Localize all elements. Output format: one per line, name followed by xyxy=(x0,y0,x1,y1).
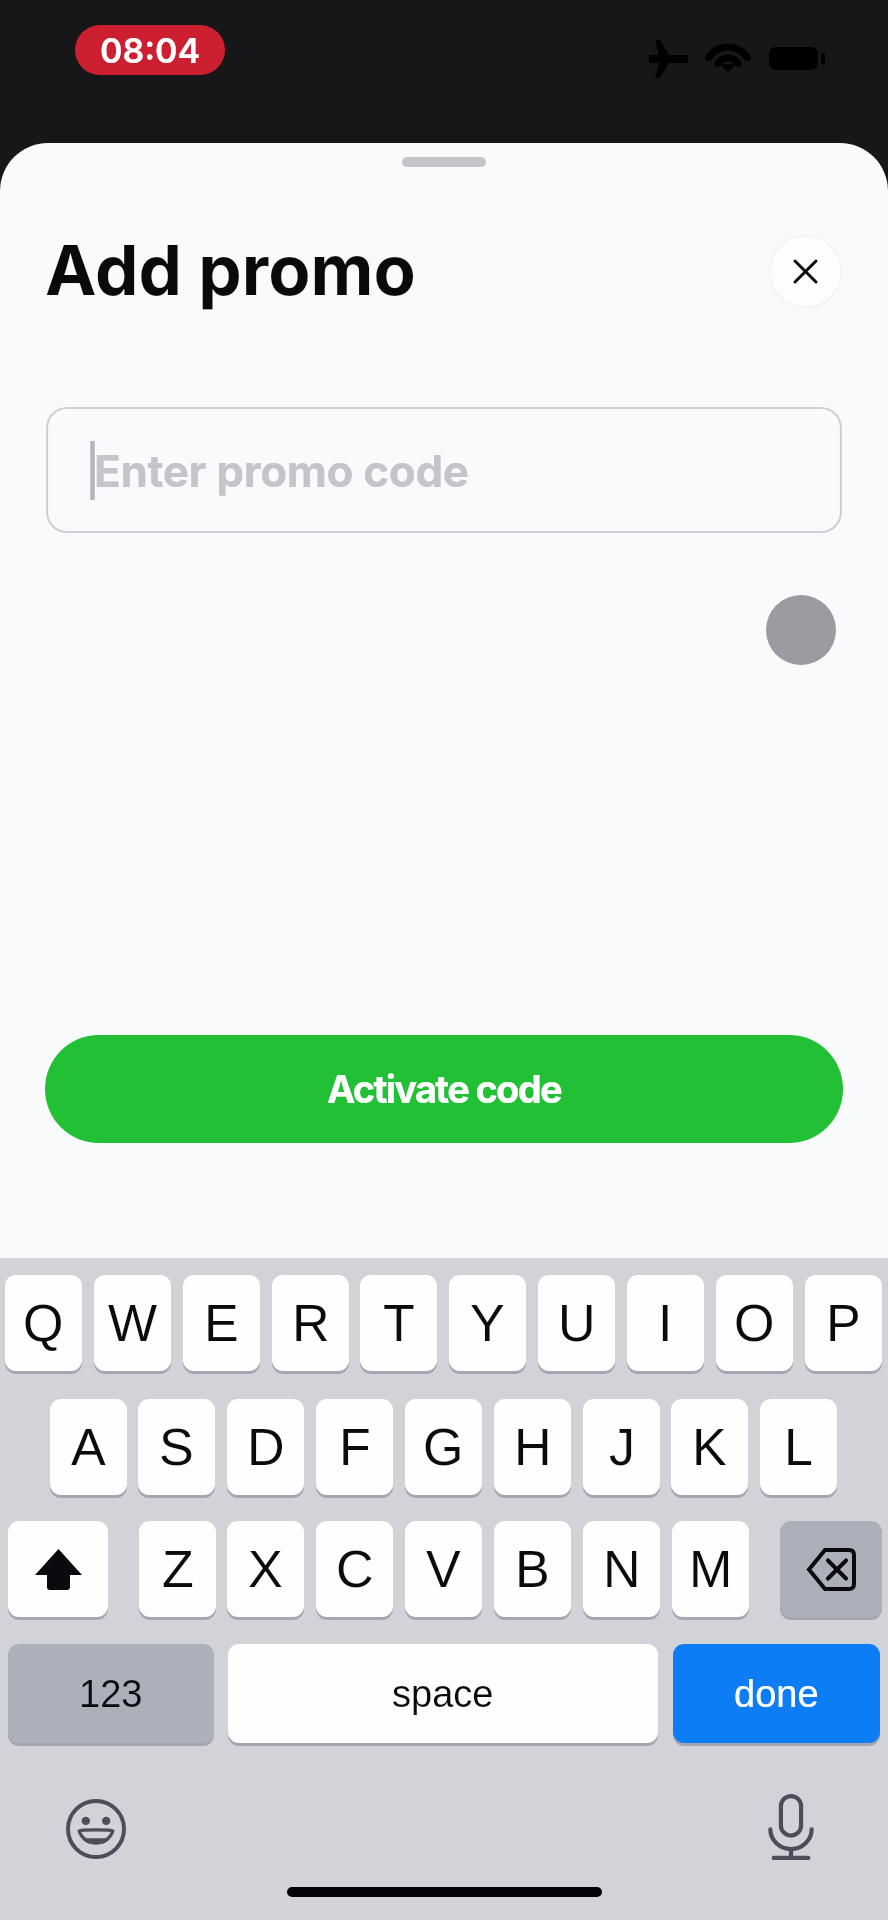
staticText: R xyxy=(292,1294,330,1352)
staticText: O xyxy=(734,1294,775,1352)
staticText: E xyxy=(204,1294,239,1352)
button[interactable]: F xyxy=(316,1399,393,1495)
button[interactable]: W xyxy=(94,1275,171,1371)
button[interactable]: I xyxy=(627,1275,704,1371)
staticText: X xyxy=(248,1540,283,1598)
button[interactable]: C xyxy=(316,1521,393,1617)
staticText: K xyxy=(692,1418,727,1476)
staticText: Add promo xyxy=(45,228,416,311)
button[interactable]: Activate code xyxy=(45,1035,843,1143)
button[interactable]: H xyxy=(494,1399,571,1495)
button[interactable]: Close xyxy=(769,235,842,308)
staticText: Q xyxy=(23,1294,64,1352)
button[interactable]: U xyxy=(538,1275,615,1371)
staticText: F xyxy=(339,1418,371,1476)
button[interactable]: Shift xyxy=(8,1521,108,1617)
button[interactable]: J xyxy=(583,1399,660,1495)
button[interactable]: A xyxy=(50,1399,127,1495)
button[interactable]: Enter promo code xyxy=(46,407,842,533)
staticText: P xyxy=(826,1294,861,1352)
staticText: T xyxy=(383,1294,415,1352)
button[interactable]: E xyxy=(183,1275,260,1371)
staticText: Activate code xyxy=(327,1066,561,1112)
staticText: 08:04 xyxy=(100,30,201,71)
staticText: B xyxy=(515,1540,550,1598)
staticText: Y xyxy=(470,1294,505,1352)
button[interactable]: Z xyxy=(139,1521,216,1617)
button[interactable]: X xyxy=(227,1521,304,1617)
button[interactable]: Q xyxy=(5,1275,82,1371)
staticText: W xyxy=(108,1294,158,1352)
staticText: G xyxy=(423,1418,464,1476)
button[interactable]: 123 xyxy=(8,1644,214,1743)
button[interactable]: R xyxy=(272,1275,349,1371)
staticText: D xyxy=(247,1418,285,1476)
button[interactable]: B xyxy=(494,1521,571,1617)
staticText: 123 xyxy=(79,1673,143,1715)
button[interactable]: S xyxy=(138,1399,215,1495)
button[interactable]: K xyxy=(671,1399,748,1495)
staticText: Z xyxy=(162,1540,194,1598)
staticText: Enter promo code xyxy=(94,444,469,497)
staticText: U xyxy=(558,1294,596,1352)
staticText: H xyxy=(514,1418,552,1476)
staticText: I xyxy=(658,1294,673,1352)
button[interactable]: Emoji keyboard xyxy=(62,1795,130,1863)
staticText: S xyxy=(159,1418,194,1476)
staticText: V xyxy=(426,1540,461,1598)
button[interactable]: G xyxy=(405,1399,482,1495)
staticText: done xyxy=(734,1673,819,1715)
button[interactable]: T xyxy=(360,1275,437,1371)
button[interactable]: Dictation xyxy=(757,1794,825,1862)
staticText: space xyxy=(392,1673,494,1715)
button[interactable]: space xyxy=(228,1644,658,1743)
button[interactable]: Y xyxy=(449,1275,526,1371)
button[interactable]: N xyxy=(583,1521,660,1617)
button[interactable]: Backspace xyxy=(780,1521,882,1617)
staticText: N xyxy=(603,1540,641,1598)
staticText: J xyxy=(609,1418,635,1476)
button[interactable]: V xyxy=(405,1521,482,1617)
button[interactable]: done xyxy=(673,1644,880,1743)
button[interactable]: M xyxy=(672,1521,749,1617)
staticText: M xyxy=(689,1540,733,1598)
button[interactable]: L xyxy=(760,1399,837,1495)
button[interactable]: O xyxy=(716,1275,793,1371)
staticText: L xyxy=(784,1418,813,1476)
staticText: C xyxy=(336,1540,374,1598)
button[interactable]: P xyxy=(805,1275,882,1371)
button[interactable]: D xyxy=(227,1399,304,1495)
staticText: A xyxy=(71,1418,106,1476)
